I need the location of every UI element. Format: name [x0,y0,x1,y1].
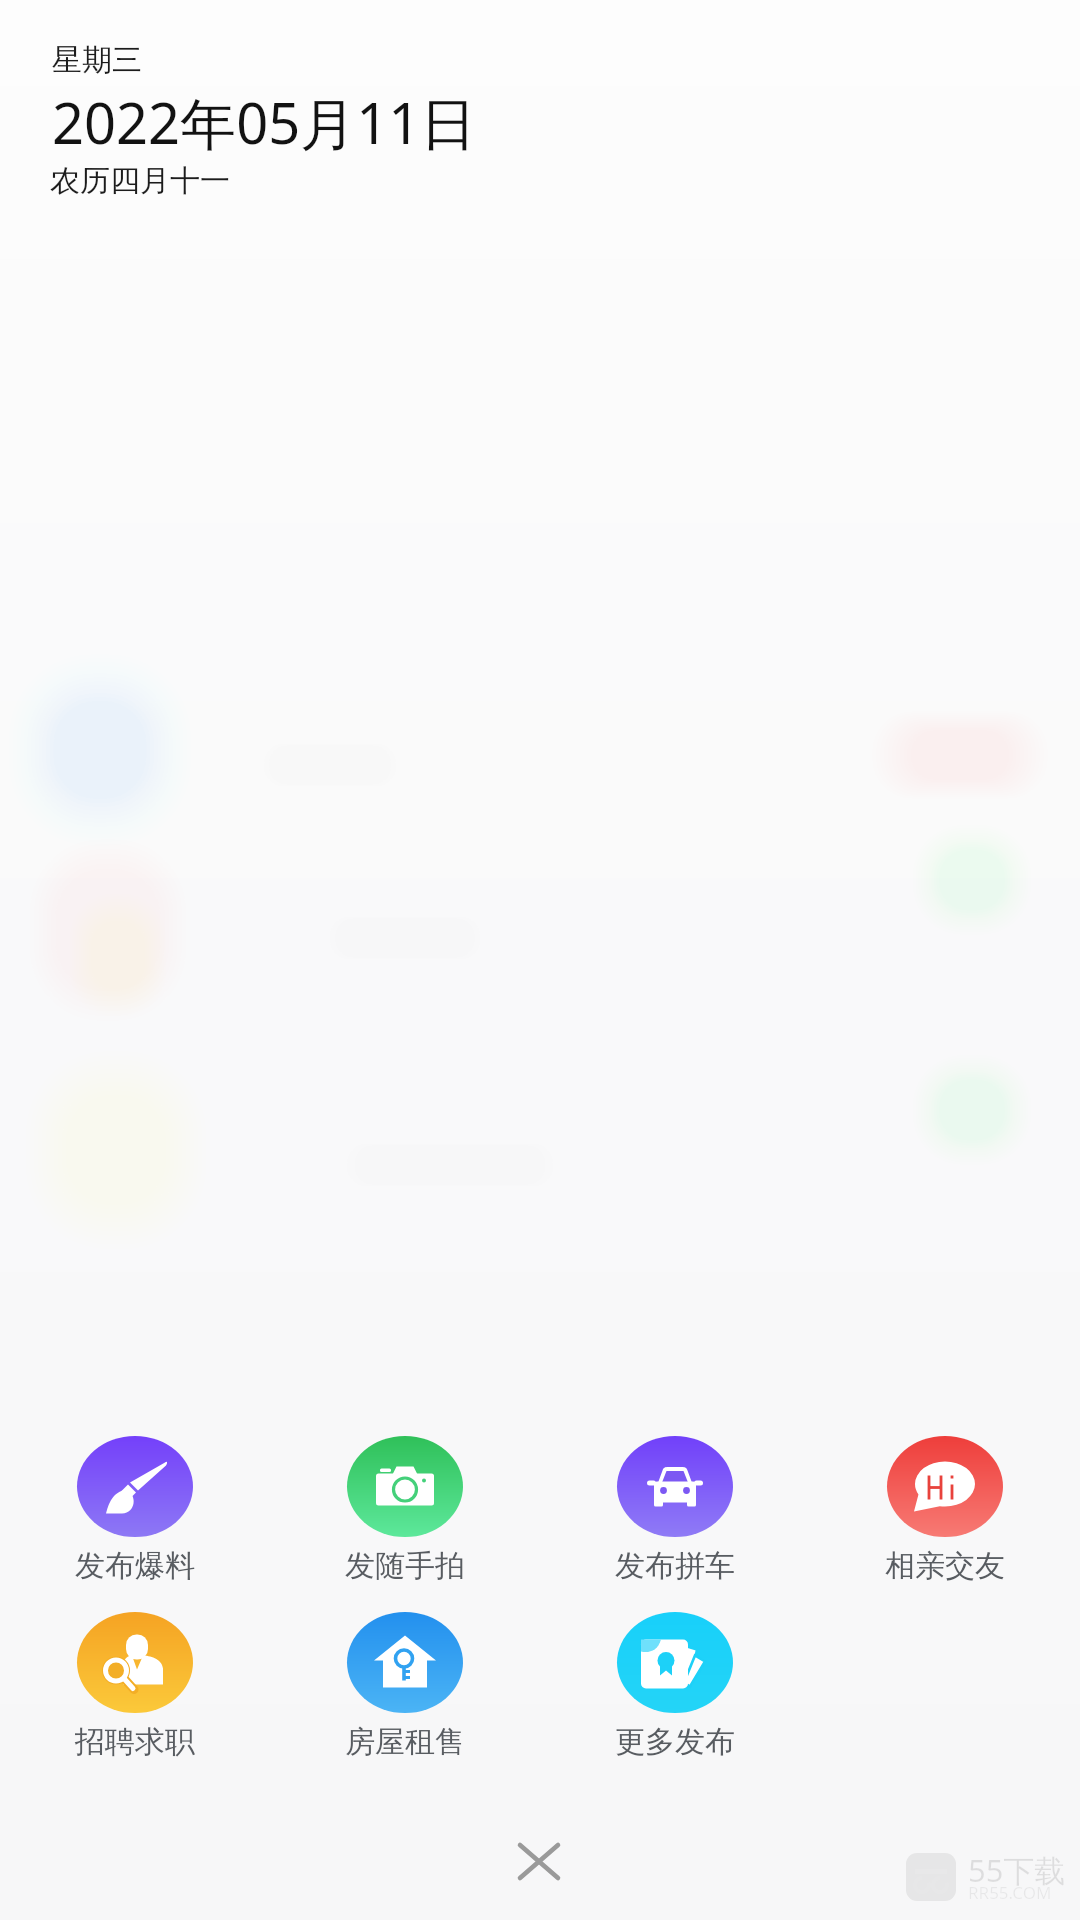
staticText: 2022年05月11日 [52,84,477,160]
button[interactable]: 发布拼车 [540,1430,810,1591]
staticText: 星期三 [52,41,142,79]
staticText: 更多发布 [615,1723,735,1761]
staticText: RR55.COM [968,1881,1052,1904]
button[interactable]: 发随手拍 [270,1430,540,1591]
button[interactable]: 房屋租售 [270,1606,540,1767]
staticText: 发随手拍 [345,1547,465,1585]
button[interactable]: 相亲交友 [810,1430,1080,1591]
button[interactable]: Close [479,1801,599,1920]
staticText: 相亲交友 [885,1547,1005,1585]
staticText: 农历四月十一 [50,162,230,200]
staticText: 发布拼车 [615,1547,735,1585]
button[interactable]: 招聘求职 [0,1606,270,1767]
staticText: 招聘求职 [75,1723,195,1761]
staticText: 55下载 [968,1849,1066,1891]
staticText: 发布爆料 [75,1547,195,1585]
button[interactable]: 更多发布 [540,1606,810,1767]
staticText: 房屋租售 [345,1723,465,1761]
button[interactable]: 发布爆料 [0,1430,270,1591]
